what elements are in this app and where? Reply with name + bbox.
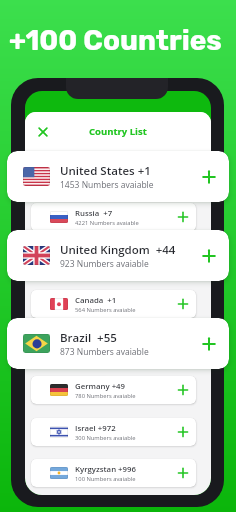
staticText: Country List bbox=[89, 125, 147, 138]
button[interactable]: United Kingdom +44 bbox=[7, 230, 229, 281]
button[interactable]: Add bbox=[200, 335, 218, 353]
button[interactable]: Germany +49 bbox=[31, 376, 196, 404]
button[interactable]: United States +1 bbox=[7, 151, 229, 202]
staticText: 923 Numbers avaiable bbox=[60, 258, 149, 270]
staticText: 4221 Numbers avaiable bbox=[75, 219, 139, 227]
button[interactable]: Brazil +55 bbox=[7, 318, 229, 369]
button[interactable]: Add bbox=[176, 210, 190, 224]
staticText: 873 Numbers avaiable bbox=[60, 346, 149, 358]
staticText: Russia +7 bbox=[75, 208, 113, 219]
staticText: 300 Numbers avaiable bbox=[75, 434, 136, 442]
staticText: +100 Countries bbox=[9, 24, 222, 57]
button[interactable]: Canada +1 bbox=[31, 290, 196, 318]
button[interactable]: Russia +7 bbox=[31, 203, 196, 231]
staticText: Kyrgyzstan +996 bbox=[75, 464, 136, 475]
staticText: Germany +49 bbox=[75, 381, 126, 392]
staticText: United States +1 bbox=[60, 163, 151, 179]
button[interactable]: Israel +972 bbox=[31, 418, 196, 446]
button[interactable]: Add bbox=[176, 297, 190, 311]
staticText: Brazil +55 bbox=[60, 330, 117, 346]
button[interactable]: Close bbox=[32, 121, 54, 143]
staticText: 1453 Numbers avaiable bbox=[60, 179, 154, 191]
staticText: 100 Numbers avaiable bbox=[75, 475, 136, 483]
staticText: Israel +972 bbox=[75, 423, 116, 434]
button[interactable]: Add bbox=[176, 425, 190, 439]
button[interactable]: Add bbox=[176, 383, 190, 397]
button[interactable]: Add bbox=[176, 466, 190, 480]
staticText: Canada +1 bbox=[75, 295, 117, 306]
staticText: 564 Numbers avaiable bbox=[75, 306, 136, 314]
button[interactable]: Kyrgyzstan +996 bbox=[31, 459, 196, 487]
staticText: United Kingdom +44 bbox=[60, 242, 176, 258]
button[interactable]: Add bbox=[200, 247, 218, 265]
button[interactable]: Add bbox=[200, 168, 218, 186]
staticText: 780 Numbers avaiable bbox=[75, 392, 136, 400]
